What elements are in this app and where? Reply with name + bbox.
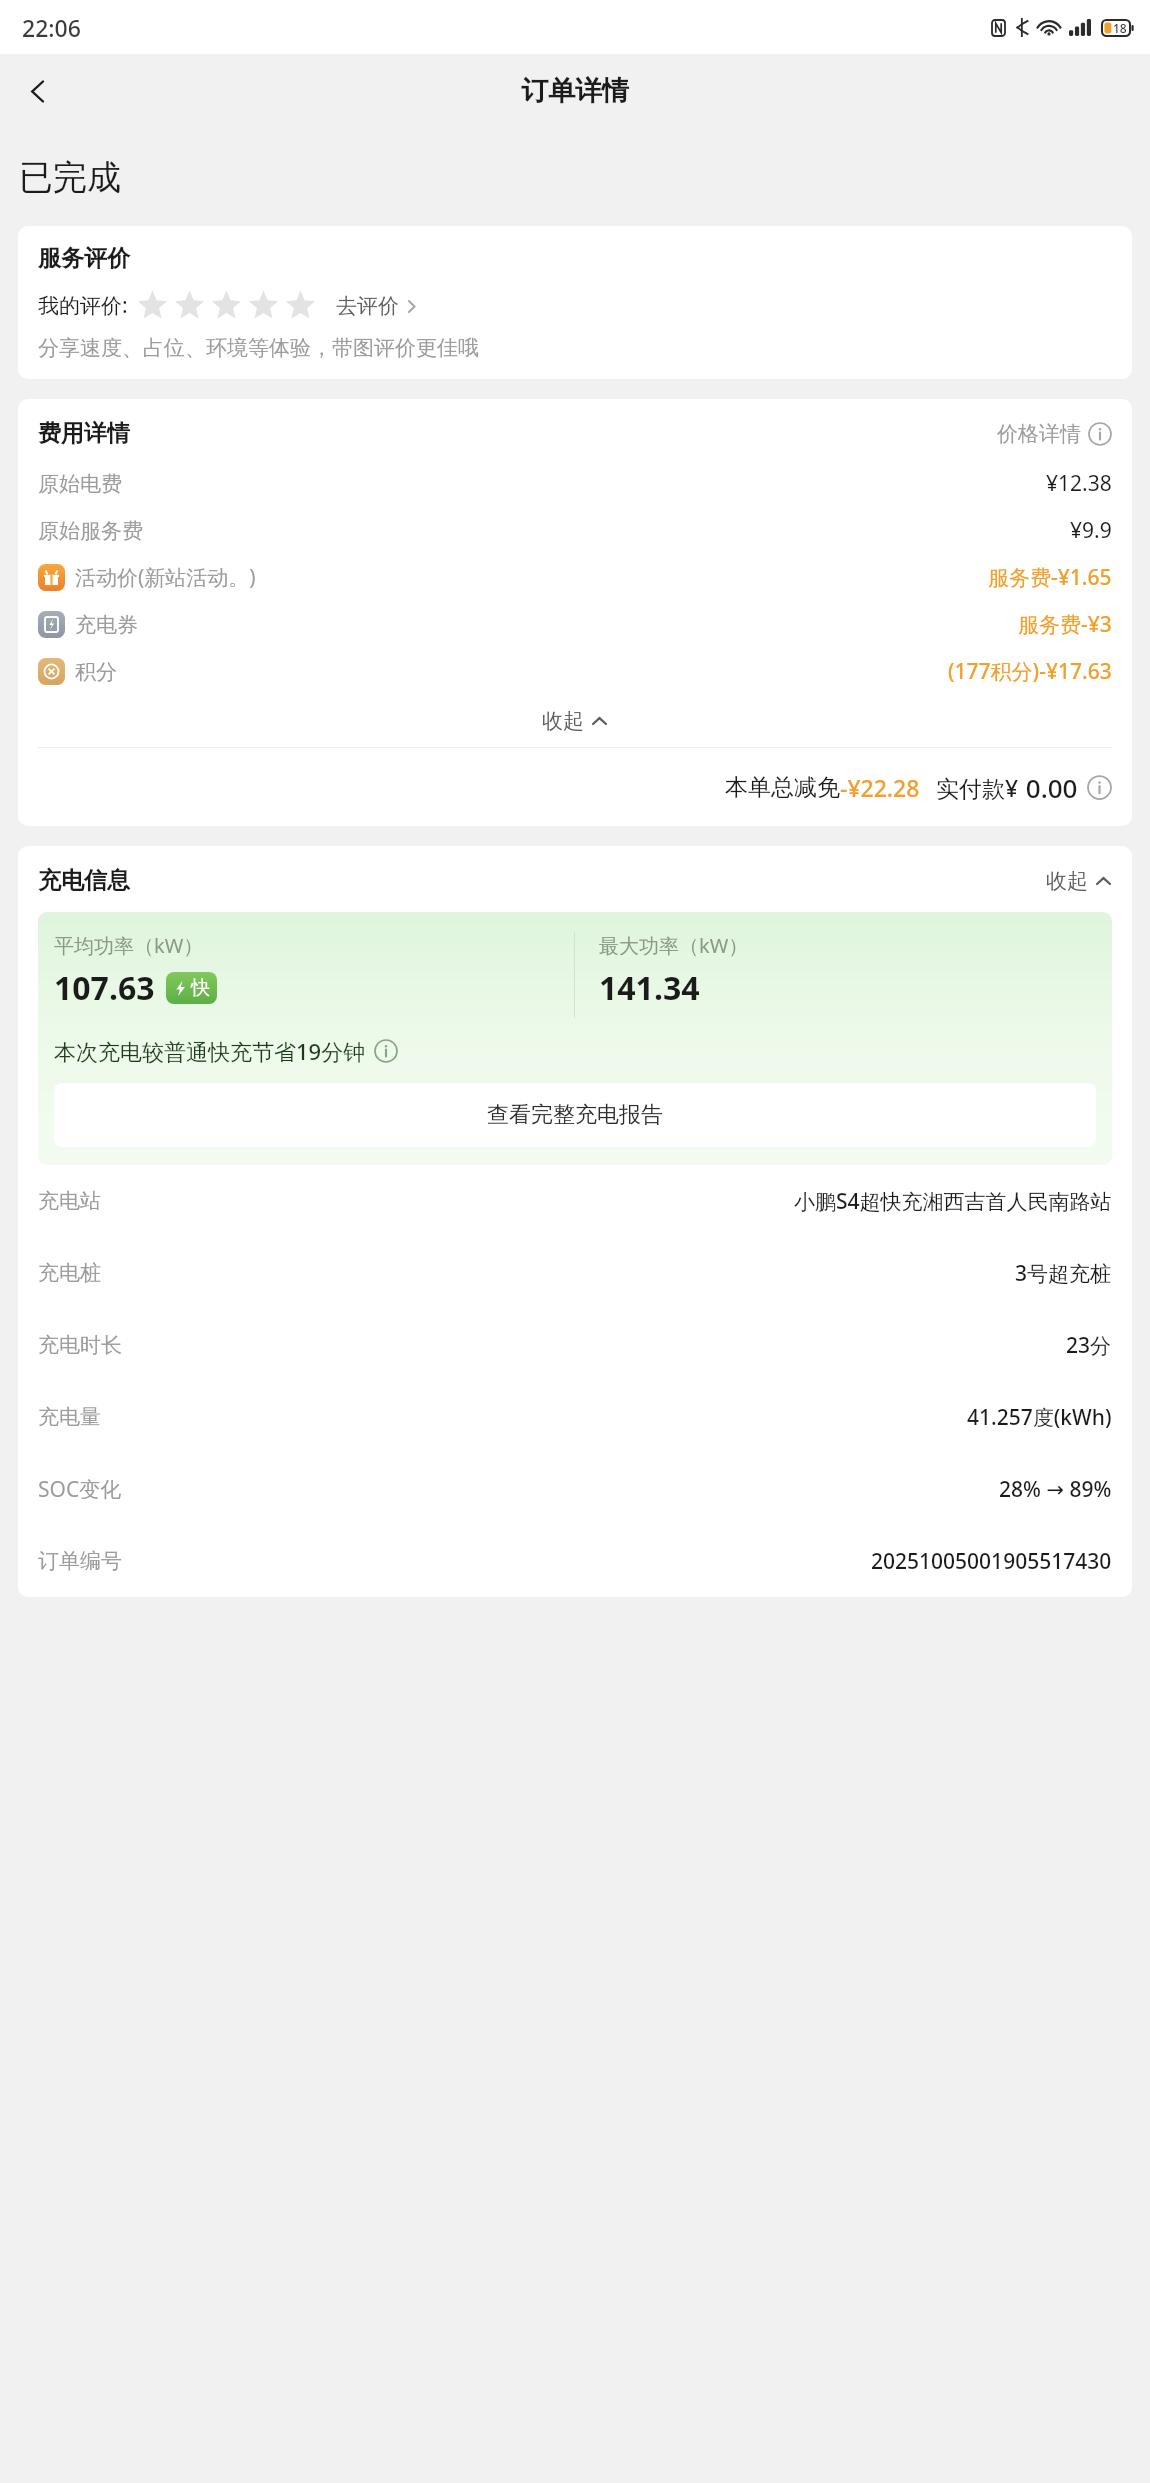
staticText: -¥22.28 <box>840 772 920 803</box>
staticText: 本单总减免 <box>725 773 840 802</box>
staticText: 分享速度、占位、环境等体验，带图评价更佳哦 <box>38 335 479 361</box>
staticText: 实付款¥ <box>936 772 1019 803</box>
staticText: 18 <box>1113 20 1127 36</box>
staticText: 本次充电较普通快充节省19分钟 <box>54 1036 366 1066</box>
staticText: 活动价(新站活动。) <box>75 563 256 592</box>
staticText: 22:06 <box>22 12 81 43</box>
staticText: 去评价 <box>336 293 399 319</box>
staticText: 查看完整充电报告 <box>487 1101 663 1129</box>
staticText: 充电站 <box>38 1188 101 1214</box>
staticText: 23分 <box>1066 1331 1112 1360</box>
button[interactable]: 去评价 <box>336 293 419 319</box>
staticText: 费用详情 <box>38 419 130 448</box>
button[interactable]: Back <box>10 63 66 119</box>
staticText: 平均功率（kW） <box>54 932 204 959</box>
staticText: 充电时长 <box>38 1332 122 1358</box>
staticText: 3号超充桩 <box>1015 1259 1112 1288</box>
staticText: 41.257度(kWh) <box>967 1403 1112 1432</box>
button[interactable]: 收起 <box>38 695 1112 747</box>
staticText: 充电桩 <box>38 1260 101 1286</box>
staticText: 服务费-¥1.65 <box>988 563 1112 592</box>
staticText: 服务费-¥3 <box>1018 610 1112 639</box>
staticText: 107.63 <box>54 966 155 1010</box>
staticText: 我的评价: <box>38 291 128 320</box>
staticText: 积分 <box>75 659 117 685</box>
staticText: 原始服务费 <box>38 518 143 544</box>
staticText: 充电信息 <box>38 866 130 895</box>
staticText: 充电券 <box>75 612 138 638</box>
staticText: 订单编号 <box>38 1548 122 1574</box>
button[interactable]: 查看完整充电报告 <box>54 1083 1096 1147</box>
staticText: 收起 <box>542 708 584 734</box>
staticText: ¥9.9 <box>1070 516 1112 545</box>
staticText: 已完成 <box>19 156 121 199</box>
staticText: 141.34 <box>599 966 700 1010</box>
staticText: ¥12.38 <box>1046 469 1112 498</box>
staticText: SOC变化 <box>38 1475 122 1504</box>
staticText: 最大功率（kW） <box>599 932 749 959</box>
button[interactable]: 价格详情 <box>997 421 1112 447</box>
staticText: 原始电费 <box>38 471 122 497</box>
staticText: 收起 <box>1046 868 1088 894</box>
staticText: 服务评价 <box>38 244 130 273</box>
staticText: 快 <box>191 976 210 1000</box>
staticText: (177积分)-¥17.63 <box>948 657 1112 686</box>
staticText: 充电量 <box>38 1404 101 1430</box>
staticText: 价格详情 <box>997 421 1081 447</box>
staticText: 0.00 <box>1019 770 1078 805</box>
staticText: 28% → 89% <box>999 1475 1112 1504</box>
staticText: 小鹏S4超快充湘西吉首人民南路站 <box>794 1187 1112 1216</box>
button[interactable]: 收起 <box>1046 868 1112 894</box>
staticText: 20251005001905517430 <box>871 1547 1112 1576</box>
staticText: 订单详情 <box>521 74 629 108</box>
